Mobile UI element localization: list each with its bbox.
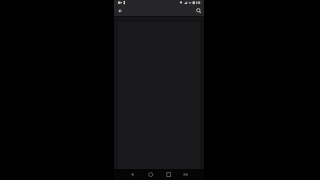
button[interactable]: Back	[128, 170, 137, 179]
button[interactable]: Recent apps	[164, 170, 173, 179]
button[interactable]: Search	[192, 5, 204, 17]
button[interactable]: Navigate up	[114, 5, 126, 17]
button[interactable]: Home	[146, 170, 155, 179]
button[interactable]: Screenshot	[181, 170, 191, 180]
